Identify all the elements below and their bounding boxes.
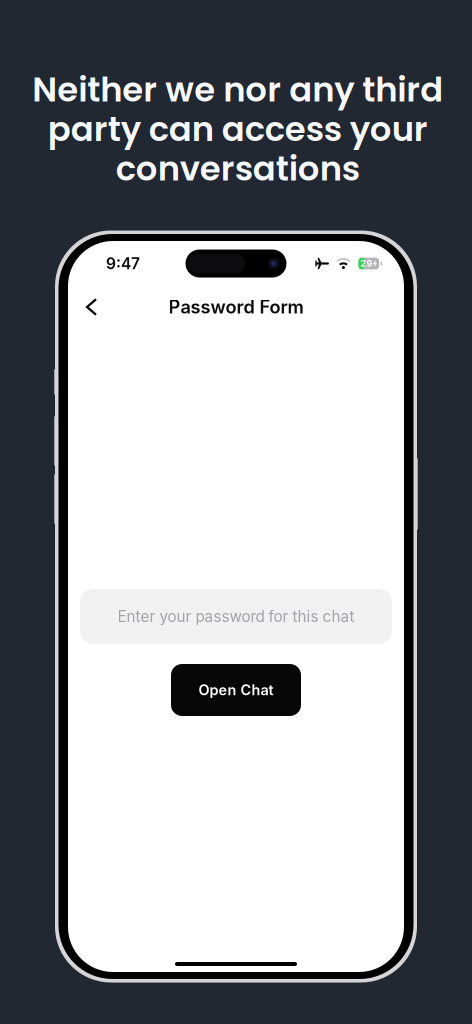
button[interactable]: Open Chat <box>171 664 301 716</box>
button[interactable]: Back <box>68 288 110 326</box>
staticText: Neither we nor any third party can acces… <box>32 66 443 192</box>
staticText: Password Form <box>168 296 303 318</box>
staticText: 29 <box>360 258 372 269</box>
staticText: Enter your password for this chat <box>117 607 354 626</box>
staticText: Open Chat <box>198 681 273 699</box>
staticText: 9:47 <box>106 254 140 273</box>
